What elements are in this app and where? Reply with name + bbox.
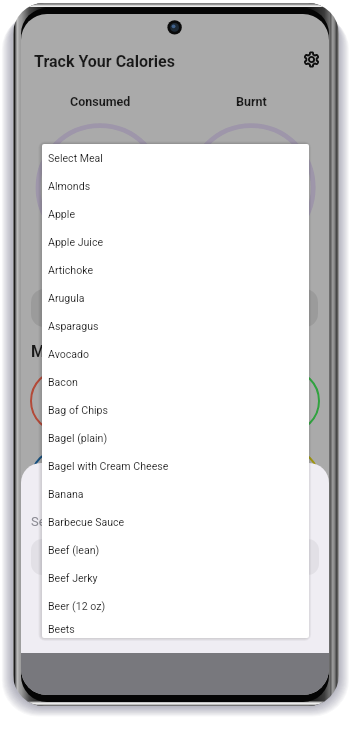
staticText: Artichoke [48, 264, 94, 276]
staticText: Arugula [48, 292, 85, 304]
staticText: Bagel (plain) [48, 432, 108, 444]
button[interactable]: Beer (12 oz) [42, 592, 309, 620]
button[interactable]: Beef (lean) [42, 536, 309, 564]
staticText: Avocado [48, 348, 90, 360]
staticText: Bacon [48, 376, 78, 388]
staticText: Apple [48, 208, 76, 220]
button[interactable]: Track Your Calories [34, 52, 175, 71]
button[interactable]: Select Meal [42, 144, 309, 172]
button[interactable]: Asparagus [42, 312, 309, 340]
button[interactable]: Avocado [42, 340, 309, 368]
staticText: Beef Jerky [48, 572, 98, 584]
button[interactable]: Artichoke [42, 256, 309, 284]
staticText: Beets [48, 623, 75, 635]
staticText: Macros [31, 342, 85, 361]
staticText: Banana [48, 488, 84, 500]
button[interactable]: Almonds [42, 172, 309, 200]
staticText: Apple Juice [48, 236, 104, 248]
staticText: Burnt [236, 94, 267, 109]
button[interactable] [31, 289, 318, 327]
staticText: Bag of Chips [48, 404, 109, 416]
button[interactable] [31, 539, 319, 575]
button[interactable]: Bacon [42, 368, 309, 396]
button[interactable]: Bagel (plain) [42, 424, 309, 452]
button[interactable]: Beets [42, 620, 309, 638]
button[interactable]: Apple [42, 200, 309, 228]
staticText: Beef (lean) [48, 544, 100, 556]
staticText: Bagel with Cream Cheese [48, 460, 169, 472]
button[interactable]: Banana [42, 480, 309, 508]
button[interactable]: Barbecue Sauce [42, 508, 309, 536]
button[interactable]: Arugula [42, 284, 309, 312]
button[interactable]: Bag of Chips [42, 396, 309, 424]
button[interactable]: Beef Jerky [42, 564, 309, 592]
staticText: Barbecue Sauce [48, 516, 125, 528]
staticText: Select Meal [48, 152, 103, 164]
button[interactable]: Settings [297, 45, 325, 73]
staticText: Beer (12 oz) [48, 600, 106, 612]
staticText: Almonds [48, 180, 91, 192]
button[interactable]: Apple Juice [42, 228, 309, 256]
button[interactable]: Bagel with Cream Cheese [42, 452, 309, 480]
staticText: Asparagus [48, 320, 99, 332]
staticText: Search [31, 514, 71, 529]
staticText: Consumed [70, 94, 131, 109]
